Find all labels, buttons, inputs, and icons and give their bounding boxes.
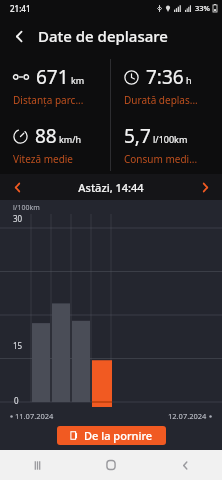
staticText: 30	[13, 213, 23, 224]
staticText: De la pornire	[84, 428, 153, 443]
button[interactable]: Previous day	[0, 174, 34, 200]
staticText: 11.07.2024	[15, 411, 54, 421]
button[interactable]: Home	[74, 450, 148, 480]
staticText: l/100km	[13, 203, 40, 213]
staticText: Distanța parc...	[13, 93, 84, 107]
staticText: Date de deplasare	[38, 26, 168, 46]
staticText: 5,7	[124, 123, 151, 149]
staticText: l/100km	[153, 133, 188, 145]
staticText: h	[186, 74, 192, 86]
staticText: km/h	[59, 133, 82, 145]
button[interactable]: 671	[0, 56, 110, 115]
staticText: 33%	[195, 3, 210, 13]
button[interactable]: Back	[148, 450, 222, 480]
staticText: Consum medi...	[124, 152, 198, 166]
staticText: 671	[36, 64, 69, 90]
staticText: 12.07.2024	[168, 411, 207, 421]
staticText: 7:36	[146, 64, 184, 90]
button[interactable]: De la pornire	[57, 426, 166, 445]
staticText: Astăzi, 14:44	[34, 180, 188, 195]
staticText: 88	[35, 123, 57, 149]
staticText: Durată deplas...	[124, 93, 198, 107]
staticText: 15	[13, 340, 23, 351]
button[interactable]: 7:36	[111, 56, 222, 115]
staticText: Viteză medie	[13, 152, 73, 166]
button[interactable]: 5,7	[111, 115, 222, 174]
button[interactable]: Next day	[188, 174, 222, 200]
staticText: 21:41	[10, 3, 31, 14]
staticText: km	[71, 74, 85, 86]
button[interactable]: Recent apps	[0, 450, 74, 480]
button[interactable]: Back	[0, 16, 38, 56]
button[interactable]: 88	[0, 115, 110, 174]
staticText: 0	[14, 395, 19, 406]
